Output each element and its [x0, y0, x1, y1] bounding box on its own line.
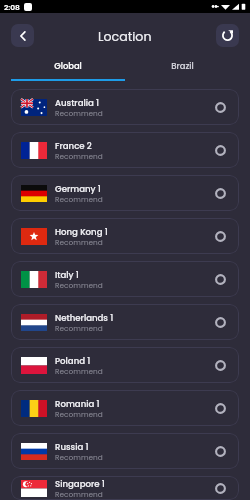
button[interactable]: Russia 1: [11, 433, 239, 469]
staticText: Recommend: [55, 151, 103, 161]
staticText: Recommend: [55, 452, 103, 462]
staticText: Russia 1: [55, 441, 89, 453]
staticText: Singapore 1: [55, 478, 105, 490]
staticText: Hong Kong 1: [55, 226, 108, 238]
button[interactable]: Italy 1: [11, 261, 239, 297]
button[interactable]: Poland 1: [11, 347, 239, 383]
staticText: Recommend: [55, 194, 103, 204]
button[interactable]: Hong Kong 1: [11, 218, 239, 254]
staticText: Australia 1: [55, 97, 100, 109]
staticText: 2:08: [4, 2, 20, 12]
button[interactable]: Brazil: [125, 58, 239, 81]
button[interactable]: Australia 1: [11, 89, 239, 125]
button[interactable]: Romania 1: [11, 390, 239, 426]
staticText: Poland 1: [55, 355, 91, 367]
staticText: France 2: [55, 140, 92, 152]
staticText: Recommend: [55, 409, 103, 419]
button[interactable]: Global: [11, 58, 125, 81]
staticText: Brazil: [171, 60, 194, 72]
staticText: Netherlands 1: [55, 312, 114, 324]
staticText: Romania 1: [55, 398, 100, 410]
staticText: Recommend: [55, 366, 103, 376]
button[interactable]: France 2: [11, 132, 239, 168]
button[interactable]: Back: [11, 24, 34, 47]
button[interactable]: Refresh: [216, 24, 239, 47]
staticText: Recommend: [55, 489, 103, 499]
button[interactable]: Germany 1: [11, 175, 239, 211]
button[interactable]: Singapore 1: [11, 476, 239, 500]
staticText: Italy 1: [55, 269, 79, 281]
staticText: Recommend: [55, 280, 103, 290]
staticText: Germany 1: [55, 183, 101, 195]
button[interactable]: Netherlands 1: [11, 304, 239, 340]
staticText: Global: [54, 60, 82, 72]
staticText: Location: [98, 28, 152, 46]
staticText: Recommend: [55, 323, 103, 333]
staticText: Recommend: [55, 108, 103, 118]
staticText: Recommend: [55, 237, 103, 247]
